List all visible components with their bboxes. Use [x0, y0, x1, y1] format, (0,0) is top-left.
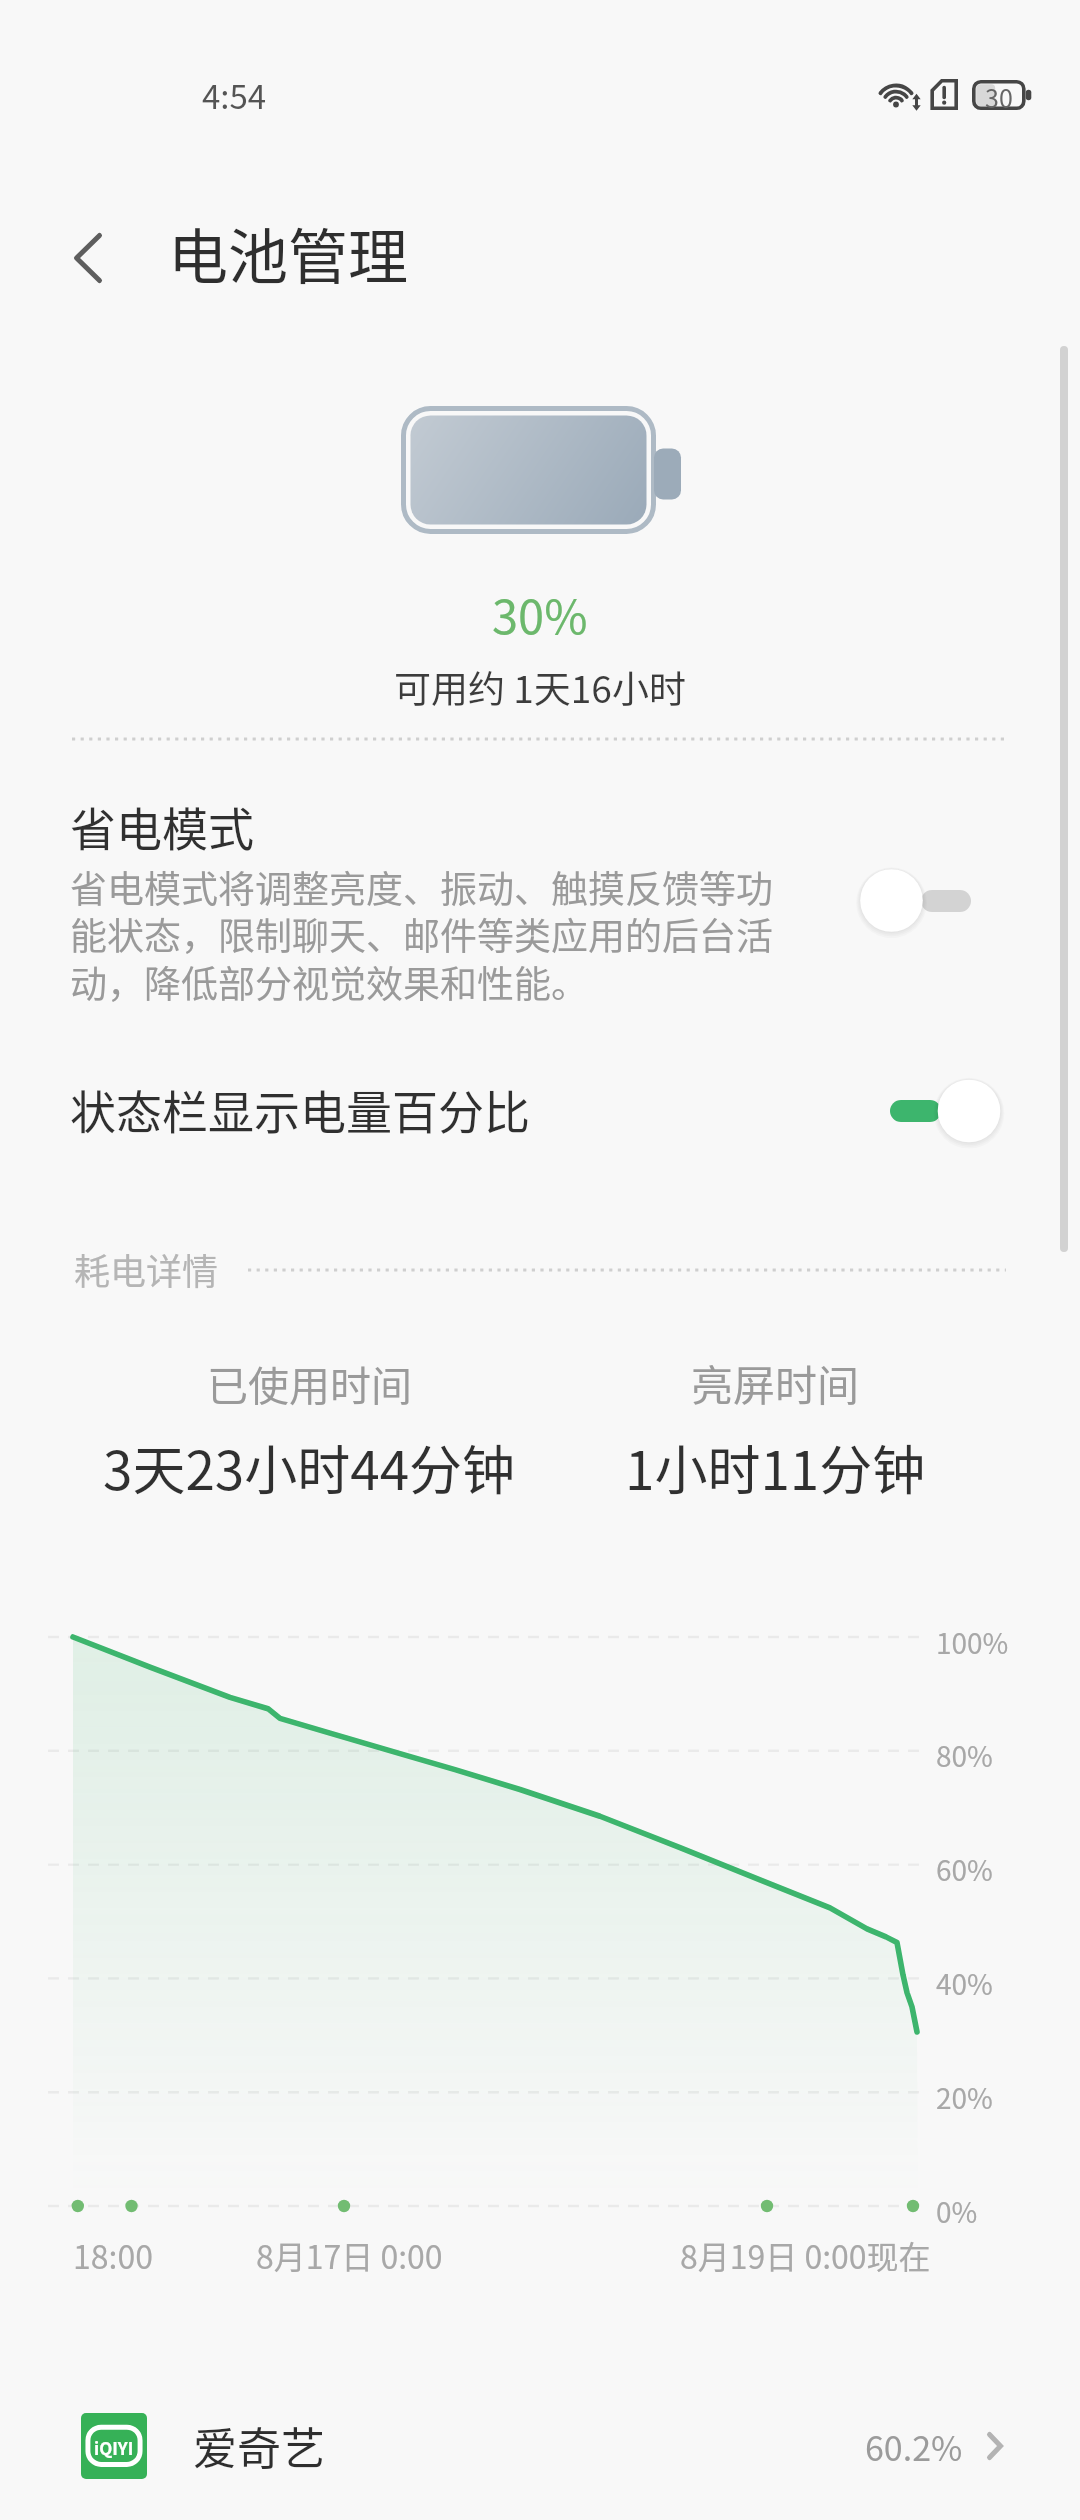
staticText: 8月19日 0:00现在 — [680, 2232, 931, 2278]
staticText: 100% — [936, 1622, 1009, 1663]
button[interactable]: 状态栏显示电量百分比 — [0, 1041, 1080, 1181]
staticText: 0% — [936, 2191, 978, 2232]
staticText: iQIYI — [94, 2435, 134, 2460]
staticText: 省电模式将调整亮度、振动、触摸反馈等功能状态，限制聊天、邮件等类应用的后台活动，… — [70, 860, 776, 1009]
staticText: 省电模式 — [70, 793, 254, 860]
staticText: 18:00 — [73, 2232, 153, 2278]
staticText: 8月17日 0:00 — [256, 2232, 443, 2278]
staticText: 亮屏时间 — [691, 1352, 860, 1412]
staticText: 80% — [936, 1735, 993, 1776]
staticText: 3天23小时44分钟 — [103, 1429, 516, 1505]
button[interactable]: 省电模式 — [0, 770, 1080, 1032]
staticText: 1小时11分钟 — [625, 1429, 926, 1505]
button[interactable]: iQIYI — [0, 2377, 1080, 2515]
staticText: 耗电详情 — [74, 1243, 219, 1295]
staticText: 状态栏显示电量百分比 — [70, 1076, 530, 1143]
staticText: 电池管理 — [168, 209, 408, 296]
staticText: 爱奇艺 — [193, 2414, 325, 2478]
staticText: 30% — [492, 579, 588, 647]
button[interactable]: 省电模式开关 — [857, 867, 1007, 937]
staticText: 30 — [985, 79, 1013, 108]
staticText: 60% — [936, 1849, 993, 1890]
staticText: 已使用时间 — [207, 1353, 412, 1412]
staticText: 可用约 1天16小时 — [394, 660, 686, 714]
staticText: 20% — [936, 2077, 993, 2118]
staticText: 40% — [936, 1963, 993, 2004]
button[interactable]: Back — [30, 200, 145, 315]
staticText: 4:54 — [202, 71, 267, 119]
button[interactable]: 状态栏显示电量百分比开关 — [880, 1078, 1030, 1148]
staticText: 60.2% — [865, 2422, 963, 2471]
